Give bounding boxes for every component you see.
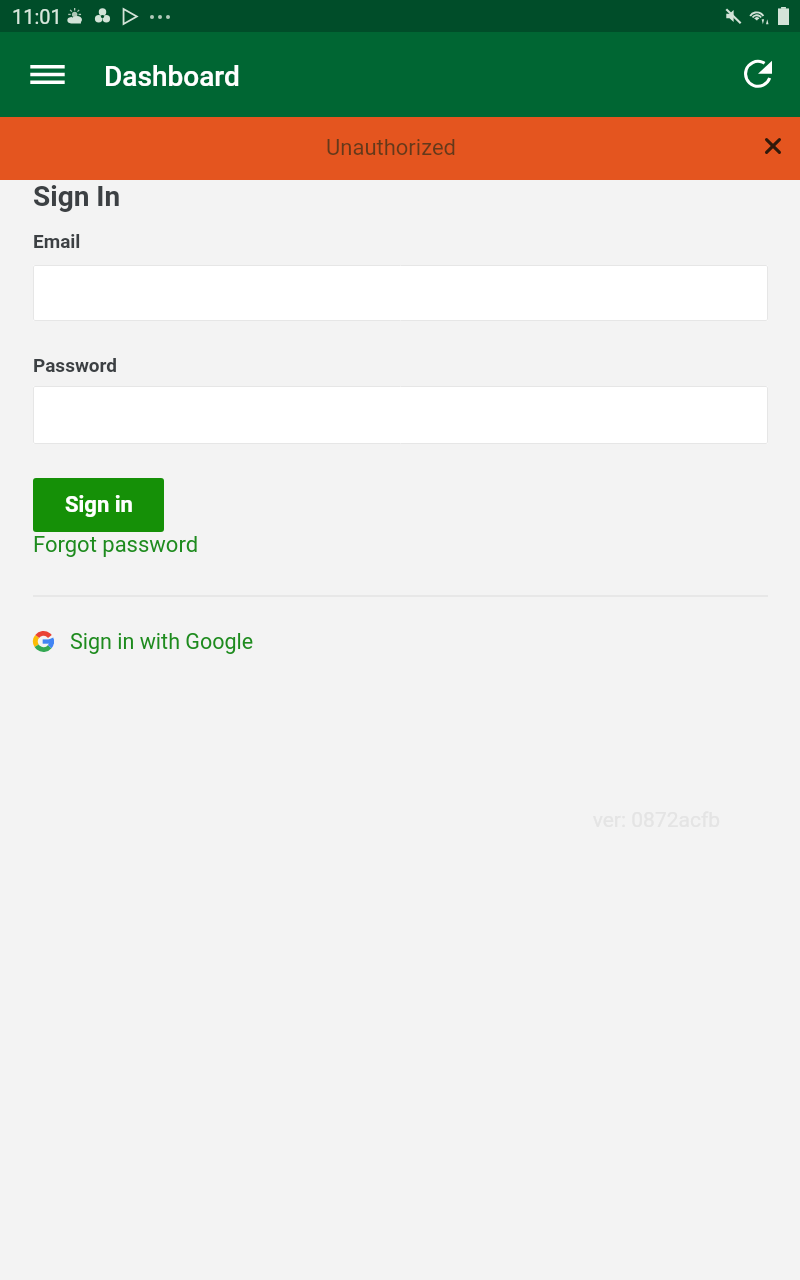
staticText: Email	[33, 230, 81, 252]
button[interactable]: Sign in	[33, 478, 164, 532]
button[interactable]: Forgot password	[33, 532, 199, 558]
staticText: Forgot password	[33, 532, 199, 558]
staticText: Sign in with Google	[70, 629, 254, 654]
button[interactable]	[33, 386, 768, 444]
button[interactable]: Sign in with Google	[33, 629, 254, 654]
staticText: Sign In	[33, 180, 121, 213]
button[interactable]: Refresh	[730, 45, 786, 101]
staticText: Unauthorized	[326, 135, 456, 161]
button[interactable]	[33, 265, 768, 321]
staticText: Sign in	[65, 492, 133, 518]
button[interactable]: Dismiss	[751, 124, 795, 168]
staticText: Dashboard	[104, 60, 240, 93]
button[interactable]: Open navigation menu	[17, 44, 78, 105]
staticText: 11:01	[12, 5, 62, 28]
staticText: Password	[33, 354, 118, 376]
